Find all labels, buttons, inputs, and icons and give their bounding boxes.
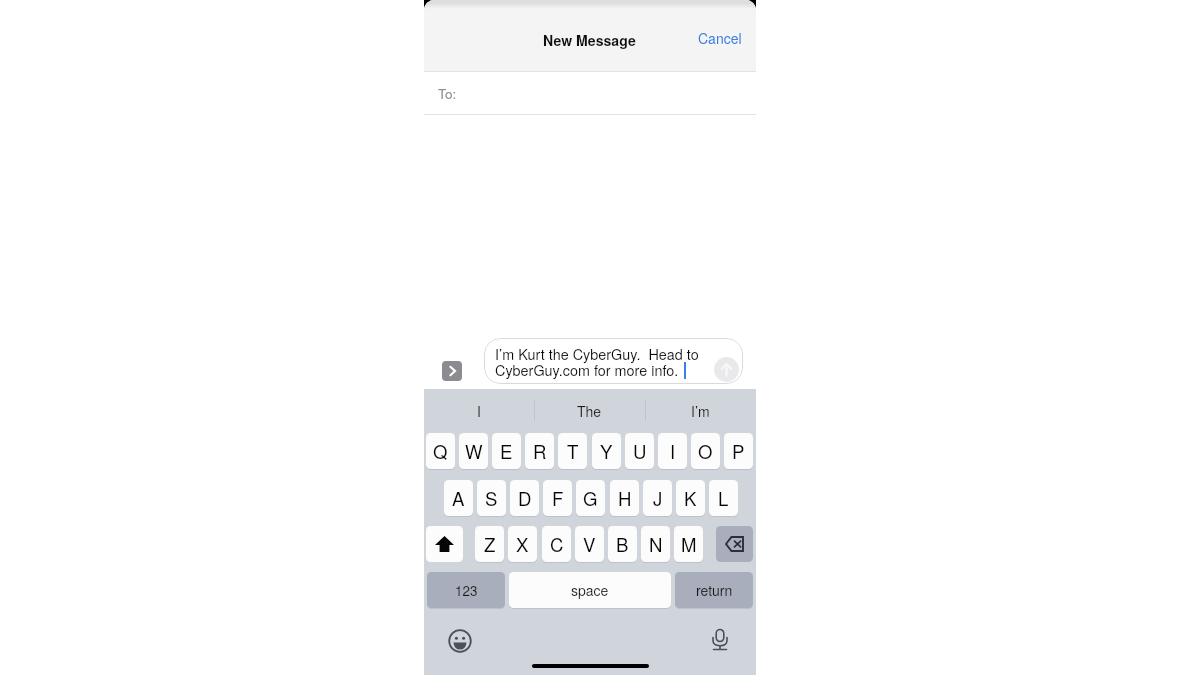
staticText: S <box>485 485 498 512</box>
staticText: V <box>583 531 596 558</box>
staticText: E <box>500 438 513 465</box>
staticText: I’m <box>691 401 710 421</box>
button[interactable]: The <box>534 389 645 424</box>
button[interactable]: G <box>576 480 605 516</box>
staticText: N <box>649 531 663 558</box>
button[interactable]: I <box>424 389 534 424</box>
button[interactable]: Emoji <box>448 629 472 653</box>
button[interactable]: M <box>674 526 703 562</box>
staticText: C <box>550 531 564 558</box>
button[interactable]: space <box>509 572 671 608</box>
staticText: I’m Kurt the CyberGuy. Head to CyberGuy.… <box>495 343 699 380</box>
button[interactable]: 123 <box>427 572 505 608</box>
button[interactable]: P <box>724 433 753 469</box>
button[interactable]: More options <box>442 361 462 381</box>
staticText: J <box>653 485 663 512</box>
staticText: M <box>681 531 697 558</box>
button[interactable]: J <box>643 480 672 516</box>
button[interactable]: Dictation <box>708 627 732 652</box>
staticText: G <box>583 485 598 512</box>
button[interactable]: K <box>676 480 705 516</box>
button[interactable]: U <box>625 433 654 469</box>
staticText: F <box>552 485 564 512</box>
button[interactable]: Z <box>475 526 504 562</box>
button[interactable]: I <box>658 433 687 469</box>
staticText: U <box>633 438 647 465</box>
staticText: P <box>732 438 745 465</box>
button[interactable]: D <box>510 480 539 516</box>
staticText: H <box>618 485 632 512</box>
button[interactable]: E <box>492 433 521 469</box>
button[interactable]: L <box>709 480 738 516</box>
button[interactable]: Send <box>714 357 739 382</box>
button[interactable]: To: <box>424 72 756 114</box>
button[interactable]: A <box>444 480 473 516</box>
button[interactable]: C <box>542 526 571 562</box>
staticText: X <box>516 531 529 558</box>
staticText: New Message <box>543 30 636 50</box>
button[interactable]: N <box>641 526 670 562</box>
staticText: The <box>577 401 602 421</box>
staticText: D <box>518 485 532 512</box>
staticText: A <box>452 485 465 512</box>
staticText: To: <box>438 84 457 103</box>
button[interactable]: O <box>691 433 720 469</box>
staticText: Q <box>433 438 448 465</box>
button[interactable]: T <box>558 433 587 469</box>
button[interactable]: return <box>675 572 753 608</box>
button[interactable]: Shift <box>426 526 463 562</box>
staticText: I <box>477 401 481 421</box>
staticText: return <box>696 580 733 600</box>
button[interactable]: X <box>508 526 537 562</box>
staticText: R <box>533 438 547 465</box>
button[interactable]: Cancel <box>692 22 748 54</box>
button[interactable]: V <box>575 526 604 562</box>
button[interactable]: Q <box>426 433 455 469</box>
staticText: B <box>616 531 629 558</box>
button[interactable]: R <box>525 433 554 469</box>
button[interactable]: S <box>477 480 506 516</box>
button[interactable]: B <box>608 526 637 562</box>
button[interactable]: F <box>543 480 572 516</box>
button[interactable]: H <box>610 480 639 516</box>
staticText: O <box>698 438 713 465</box>
staticText: space <box>571 580 609 600</box>
button[interactable]: I’m Kurt the CyberGuy. Head to CyberGuy.… <box>484 338 743 384</box>
staticText: 123 <box>455 581 478 600</box>
button[interactable]: I’m <box>645 389 756 424</box>
button[interactable]: Backspace <box>716 526 753 562</box>
staticText: Cancel <box>698 28 742 48</box>
staticText: L <box>718 485 729 512</box>
button[interactable]: W <box>459 433 488 469</box>
staticText: K <box>684 485 697 512</box>
staticText: I <box>670 438 676 465</box>
staticText: Y <box>600 438 613 465</box>
staticText: Z <box>484 531 496 558</box>
button[interactable]: Y <box>592 433 621 469</box>
staticText: T <box>567 438 579 465</box>
staticText: W <box>465 438 483 465</box>
